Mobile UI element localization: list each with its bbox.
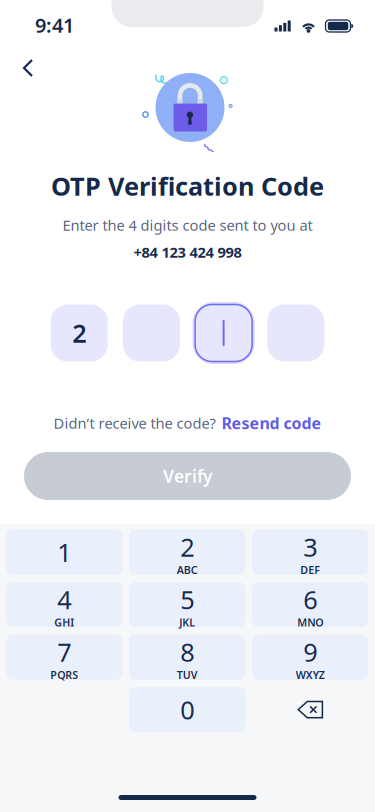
staticText: 7 xyxy=(57,635,71,669)
button[interactable]: 2 xyxy=(129,530,245,575)
button[interactable]: 3 xyxy=(252,530,368,575)
staticText: 6 xyxy=(303,583,317,616)
staticText: WXYZ xyxy=(296,668,325,682)
staticText: ABC xyxy=(177,563,198,577)
button[interactable]: Delete xyxy=(252,687,368,732)
staticText: +84 123 424 998 xyxy=(133,242,241,262)
button[interactable]: 7 xyxy=(6,635,122,680)
staticText: OTP Verification Code xyxy=(51,169,324,203)
staticText: Resend code xyxy=(221,412,321,434)
staticText: 1 xyxy=(57,535,71,569)
staticText: JKL xyxy=(179,615,195,629)
button[interactable]: 4 xyxy=(6,582,122,627)
button[interactable]: 0 xyxy=(129,687,245,732)
staticText: 4 xyxy=(57,583,71,616)
button[interactable]: 9 xyxy=(252,635,368,680)
staticText: 2 xyxy=(180,530,194,564)
staticText: TUV xyxy=(177,668,198,682)
button[interactable]: 5 xyxy=(129,582,245,627)
staticText: 3 xyxy=(303,530,317,564)
button[interactable]: Resend code xyxy=(221,412,321,434)
staticText: Verify xyxy=(163,464,212,487)
staticText: 5 xyxy=(180,583,194,616)
button[interactable]: 1 xyxy=(6,530,122,575)
staticText: 0 xyxy=(180,693,194,726)
staticText: PQRS xyxy=(50,668,78,682)
staticText: Didn’t receive the code? xyxy=(53,413,215,433)
staticText: Enter the 4 digits code sent to you at xyxy=(62,215,312,235)
staticText: 9 xyxy=(303,635,317,669)
staticText: 8 xyxy=(180,635,194,669)
staticText: DEF xyxy=(300,563,320,577)
staticText: MNO xyxy=(297,615,323,629)
staticText: GHI xyxy=(54,615,74,629)
button[interactable]: Back xyxy=(12,46,56,90)
button[interactable]: Verify xyxy=(24,452,351,500)
button[interactable]: 6 xyxy=(252,582,368,627)
staticText: 2 xyxy=(72,316,86,350)
staticText: 9:41 xyxy=(35,12,74,38)
button[interactable]: 8 xyxy=(129,635,245,680)
